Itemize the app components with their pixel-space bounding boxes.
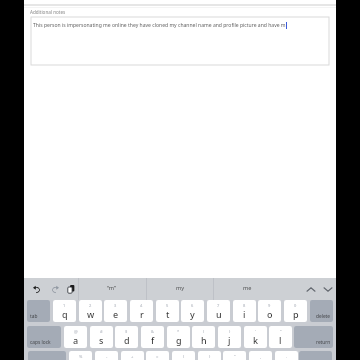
button[interactable]: tab xyxy=(27,300,50,322)
button[interactable]: This person is impersonating me online t… xyxy=(31,17,329,65)
staticText: delete xyxy=(316,313,331,320)
button[interactable]: * xyxy=(167,326,190,348)
button[interactable]: 1 xyxy=(53,300,76,322)
staticText: ( xyxy=(183,354,185,359)
button[interactable]: ) xyxy=(218,326,241,348)
staticText: o xyxy=(267,308,273,320)
button[interactable]: Previous suggestion xyxy=(302,278,320,300)
staticText: e xyxy=(113,308,119,320)
button[interactable]: 3 xyxy=(104,300,127,322)
staticText: 1 xyxy=(63,303,66,308)
staticText: ” xyxy=(280,329,282,334)
staticText: return xyxy=(316,339,331,346)
staticText: $ xyxy=(125,329,128,334)
staticText: - xyxy=(106,354,108,359)
staticText: 5 xyxy=(166,303,169,308)
staticText: 6 xyxy=(191,303,194,308)
staticText: u xyxy=(216,308,222,320)
staticText: , xyxy=(260,354,262,359)
staticText: ) xyxy=(229,329,231,334)
button[interactable]: Paste xyxy=(63,278,79,300)
staticText: % xyxy=(79,354,83,359)
staticText: caps lock xyxy=(30,339,51,346)
staticText: s xyxy=(99,334,104,346)
staticText: * xyxy=(177,329,180,334)
button[interactable]: & xyxy=(141,326,164,348)
button[interactable]: = xyxy=(146,351,169,360)
button[interactable]: # xyxy=(90,326,113,348)
staticText: j xyxy=(228,334,231,346)
button[interactable]: 2 xyxy=(79,300,102,322)
staticText: Additional notes xyxy=(30,9,66,15)
button[interactable]: + xyxy=(121,351,144,360)
button[interactable]: 0 xyxy=(284,300,307,322)
staticText: g xyxy=(176,334,182,346)
button[interactable]: , xyxy=(249,351,272,360)
staticText: + xyxy=(131,354,134,359)
staticText: k xyxy=(253,334,259,346)
staticText: . xyxy=(286,354,288,359)
staticText: f xyxy=(151,334,155,346)
button[interactable]: return xyxy=(294,326,333,348)
staticText: # xyxy=(100,329,103,334)
staticText: 8 xyxy=(243,303,246,308)
button[interactable]: 4 xyxy=(130,300,153,322)
staticText: w xyxy=(87,308,95,320)
staticText: “ xyxy=(234,354,236,359)
staticText: y xyxy=(190,308,195,320)
button[interactable]: delete xyxy=(310,300,333,322)
button[interactable]: 5 xyxy=(156,300,179,322)
staticText: l xyxy=(279,334,282,346)
staticText: ( xyxy=(203,329,205,334)
staticText: q xyxy=(62,308,68,320)
staticText: a xyxy=(73,334,79,346)
staticText: @ xyxy=(74,329,78,334)
staticText: 2 xyxy=(89,303,92,308)
button[interactable]: Redo xyxy=(47,278,63,300)
staticText: & xyxy=(151,329,154,334)
button[interactable]: - xyxy=(95,351,118,360)
staticText: = xyxy=(156,354,159,359)
staticText: 3 xyxy=(114,303,117,308)
button[interactable]: $ xyxy=(115,326,138,348)
button[interactable]: “m” xyxy=(78,278,146,300)
button[interactable]: me xyxy=(213,278,281,300)
button[interactable]: ’ xyxy=(244,326,267,348)
staticText: h xyxy=(201,334,207,346)
button[interactable]: Undo xyxy=(29,278,45,300)
button[interactable]: Next suggestion xyxy=(319,278,337,300)
staticText: ) xyxy=(209,354,211,359)
button[interactable]: 8 xyxy=(233,300,256,322)
button[interactable]: ) xyxy=(198,351,221,360)
staticText: This person is impersonating me online t… xyxy=(33,22,286,29)
staticText: my xyxy=(176,284,185,292)
button[interactable]: ( xyxy=(192,326,215,348)
staticText: 9 xyxy=(268,303,271,308)
button[interactable]: ” xyxy=(269,326,292,348)
button[interactable]: . xyxy=(275,351,298,360)
button[interactable]: caps lock xyxy=(27,326,61,348)
button[interactable]: 9 xyxy=(258,300,281,322)
button[interactable]: 7 xyxy=(207,300,230,322)
button[interactable]: 6 xyxy=(181,300,204,322)
button[interactable]: ( xyxy=(172,351,195,360)
staticText: ’ xyxy=(255,329,256,334)
staticText: i xyxy=(243,308,246,320)
button[interactable]: @ xyxy=(64,326,87,348)
staticText: p xyxy=(293,308,299,320)
button[interactable]: my xyxy=(146,278,214,300)
staticText: r xyxy=(140,308,144,320)
staticText: 7 xyxy=(217,303,220,308)
button[interactable]: % xyxy=(69,351,92,360)
button[interactable]: “ xyxy=(223,351,246,360)
